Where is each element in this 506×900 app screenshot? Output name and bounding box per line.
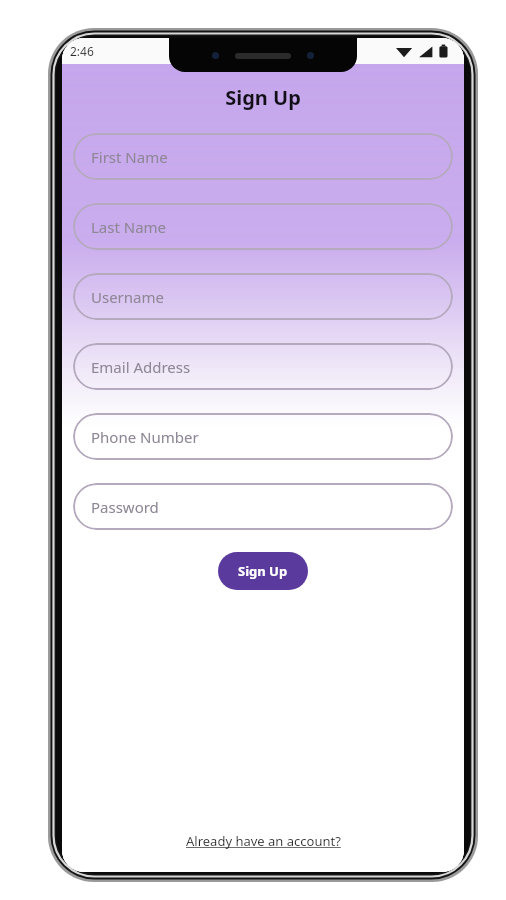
staticText: Username — [91, 287, 164, 307]
button[interactable]: Password — [73, 483, 453, 530]
button[interactable]: Sign Up — [218, 552, 308, 590]
staticText: Phone Number — [91, 427, 199, 447]
button[interactable]: Already have an account? — [178, 824, 349, 858]
button[interactable]: First Name — [73, 133, 453, 180]
staticText: Sign Up — [225, 84, 301, 111]
staticText: Already have an account? — [186, 832, 341, 850]
button[interactable]: Username — [73, 273, 453, 320]
staticText: Email Address — [91, 357, 191, 377]
staticText: Last Name — [91, 217, 167, 237]
button[interactable]: Last Name — [73, 203, 453, 250]
staticText: First Name — [91, 147, 168, 167]
button[interactable]: Email Address — [73, 343, 453, 390]
button[interactable]: Phone Number — [73, 413, 453, 460]
staticText: Password — [91, 497, 159, 517]
staticText: 2:46 — [70, 43, 94, 59]
staticText: Sign Up — [238, 562, 288, 580]
